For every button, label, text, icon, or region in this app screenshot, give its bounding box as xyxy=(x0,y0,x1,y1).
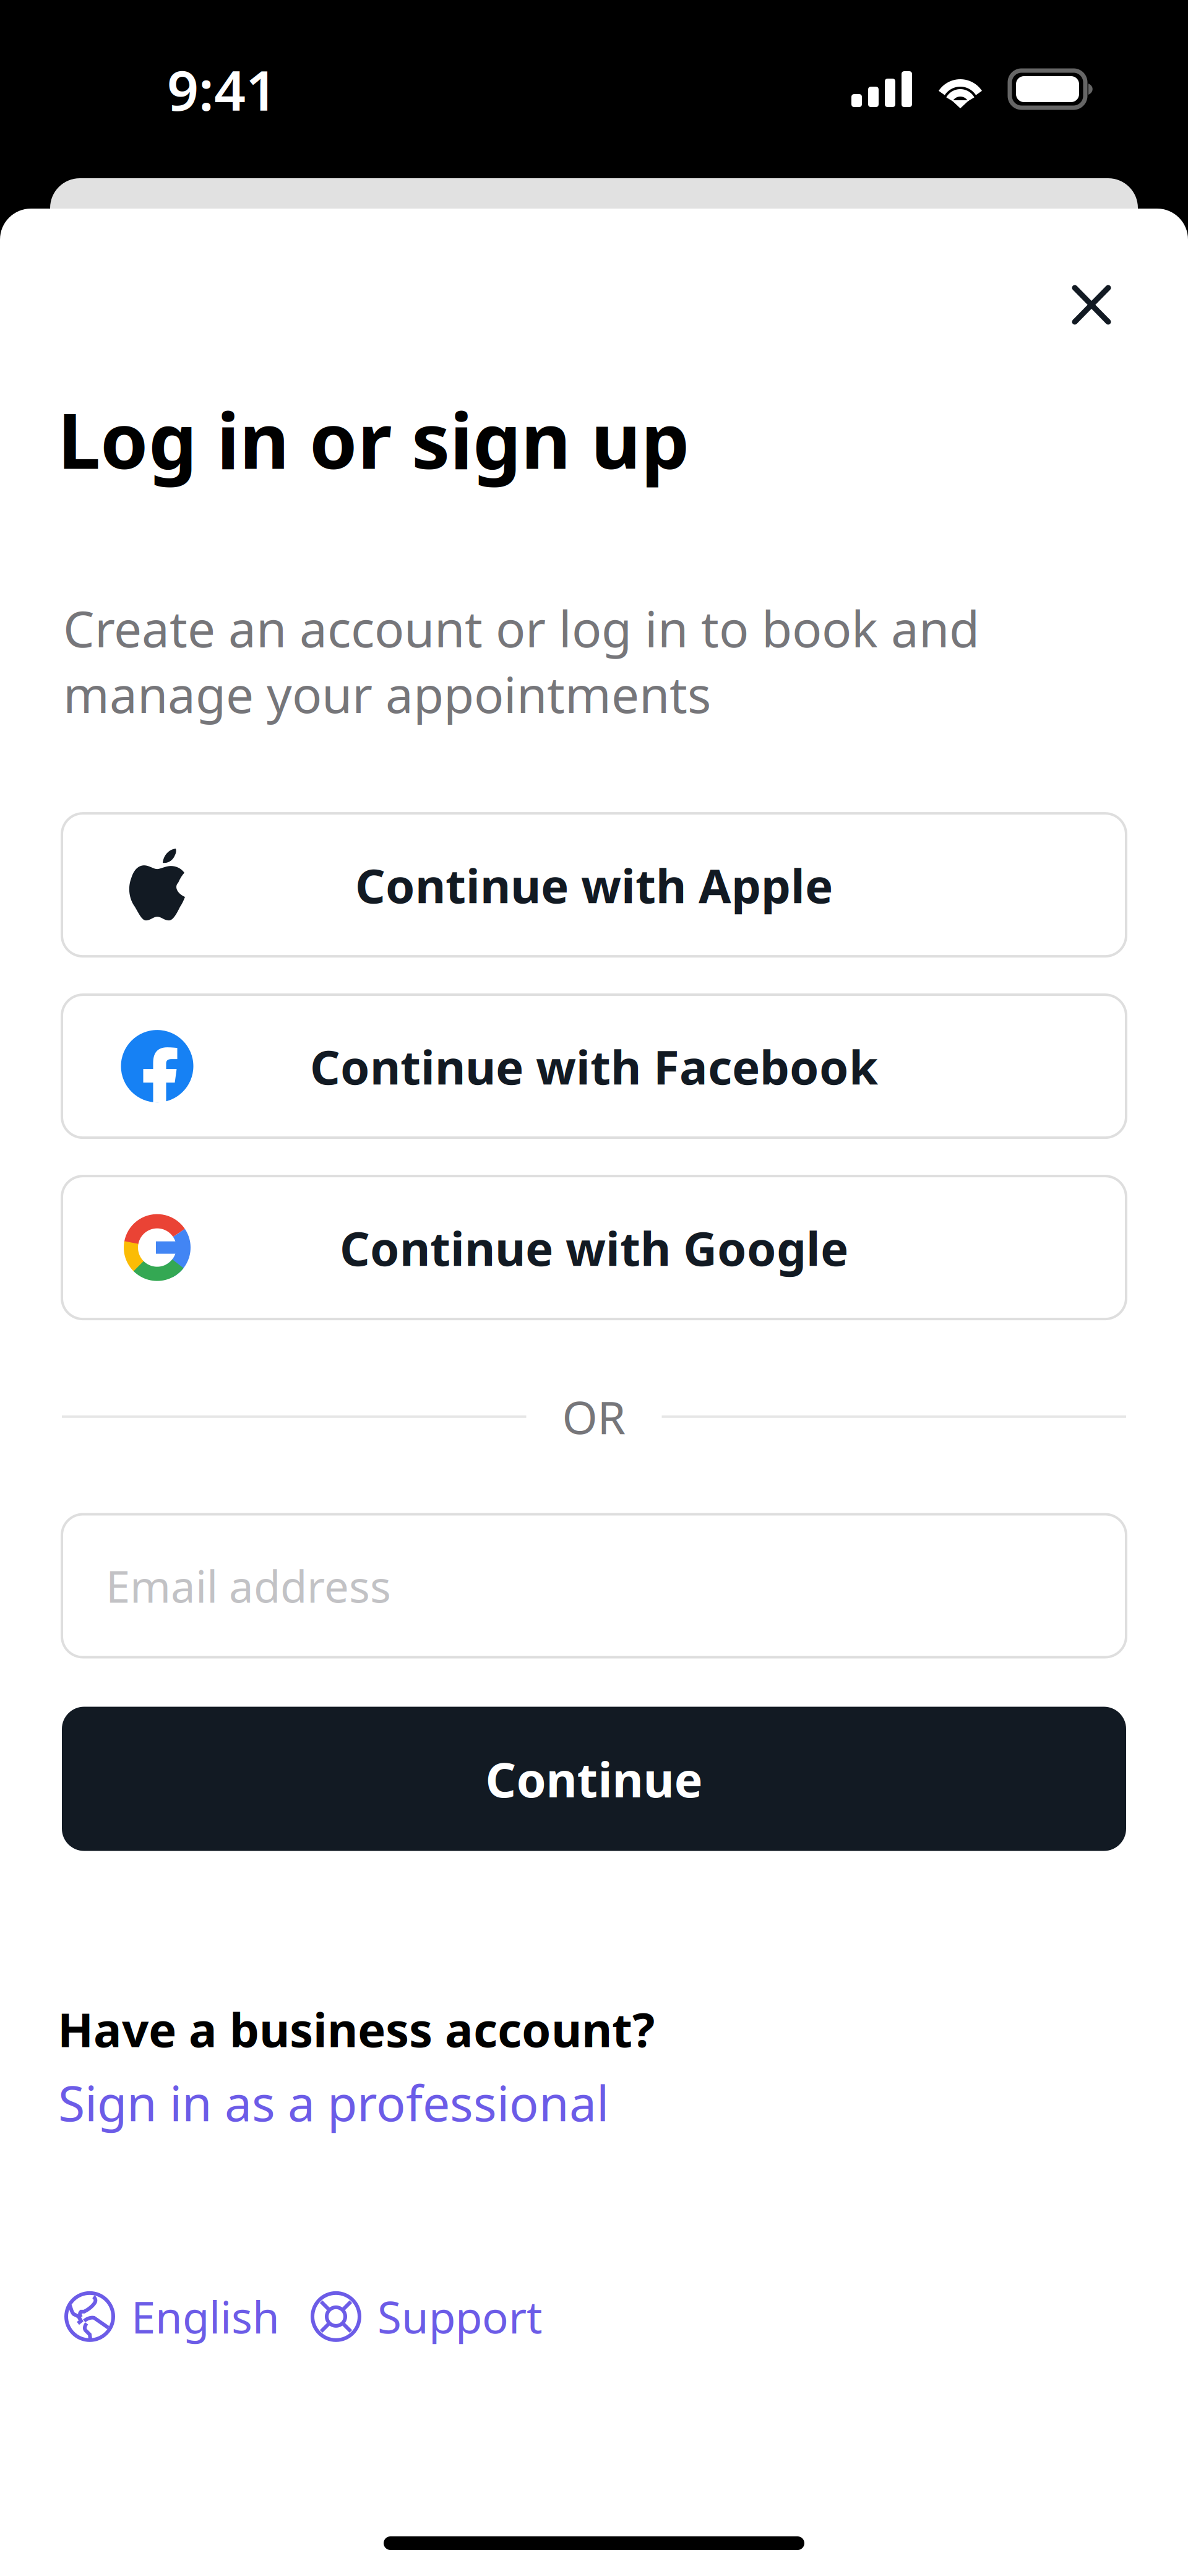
staticText: English xyxy=(131,2288,280,2346)
staticText: Continue with Google xyxy=(340,1216,848,1279)
staticText: Continue with Apple xyxy=(355,854,833,916)
button[interactable]: Continue xyxy=(62,1707,1126,1851)
staticText: Create an account or log in to book and … xyxy=(63,595,979,727)
staticText: Continue xyxy=(485,1747,703,1811)
button[interactable]: Continue with Facebook xyxy=(62,995,1126,1138)
staticText: Continue with Facebook xyxy=(310,1035,878,1097)
button[interactable]: Close xyxy=(1052,266,1131,344)
button[interactable]: Continue with Apple xyxy=(62,813,1126,956)
staticText: Log in or sign up xyxy=(58,388,689,490)
staticText: Email address xyxy=(106,1557,391,1615)
button[interactable]: Continue with Google xyxy=(62,1176,1126,1319)
staticText: Sign in as a professional xyxy=(58,2070,609,2135)
staticText: OR xyxy=(562,1386,626,1447)
button[interactable]: Sign in as a professional xyxy=(0,2060,609,2135)
staticText: Have a business account? xyxy=(58,1998,655,2060)
staticText: 9:41 xyxy=(167,52,277,126)
button[interactable]: Support xyxy=(312,2288,543,2346)
button[interactable]: English xyxy=(66,2288,280,2346)
staticText: Support xyxy=(377,2288,543,2346)
